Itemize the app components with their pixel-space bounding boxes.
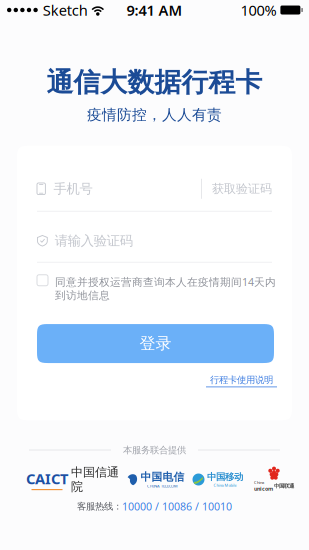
staticText: 行程卡使用说明 [210,374,273,385]
staticText: 疫情防控，人人有责 [87,106,222,124]
staticText: 手机号 [53,181,92,197]
staticText: unicom [254,485,273,492]
staticText: 客服热线： [77,501,122,512]
staticText: 9:41 AM [126,0,182,20]
staticText: 10000 / 10086 / 10010 [122,499,232,513]
button[interactable]: 获取验证码 [202,172,272,206]
staticText: 本服务联合提供 [123,444,186,456]
staticText: 同意并授权运营商查询本人在疫情期间14天内到访地信息 [55,275,276,302]
staticText: 中国信通院 [71,465,119,494]
button[interactable]: 登录 [37,324,274,363]
staticText: China Mobile [213,483,236,488]
staticText: CHINA TELECOM [147,483,178,489]
staticText: China [254,480,264,485]
staticText: Sketch [43,0,88,20]
staticText: 请输入验证码 [55,233,133,249]
staticText: 中国移动 [207,471,243,483]
staticText: 登录 [139,334,171,353]
staticText: 100% [240,0,276,20]
button[interactable]: 行程卡使用说明 [206,374,277,387]
staticText: 通信大数据行程卡 [46,66,262,99]
staticText: 中国电信 [140,470,184,483]
staticText: 获取验证码 [212,181,272,196]
staticText: CAICT [26,469,68,488]
staticText: 中国联通 [274,483,294,489]
button[interactable]: 同意并授权运营商查询本人在疫情期间14天内到访地信息 [17,275,292,302]
